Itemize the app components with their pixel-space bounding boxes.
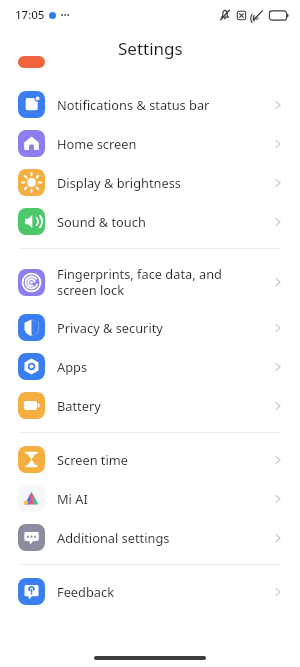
button[interactable]: Notifications & status bar (0, 85, 300, 124)
button[interactable]: Feedback (0, 572, 300, 611)
button[interactable]: Sound & touch (0, 202, 300, 241)
staticText: Fingerprints, face data, and screen lock (57, 265, 222, 299)
staticText: Apps (57, 358, 88, 375)
staticText: Screen time (57, 451, 128, 468)
staticText: 17:05 (15, 7, 45, 23)
button[interactable]: Additional settings (0, 518, 300, 557)
staticText: Display & brightness (57, 174, 181, 191)
staticText: Battery (57, 397, 101, 414)
button[interactable]: Fingerprints, face data, and screen lock (0, 256, 300, 308)
button[interactable]: Battery (0, 386, 300, 425)
button[interactable]: Apps (0, 347, 300, 386)
staticText: Mi AI (57, 490, 88, 507)
button[interactable]: Home screen (0, 124, 300, 163)
staticText: Privacy & security (57, 319, 163, 336)
staticText: Feedback (57, 583, 114, 600)
staticText: Home screen (57, 135, 137, 152)
staticText: Sound & touch (57, 213, 146, 230)
button[interactable]: Mi AI (0, 479, 300, 518)
staticText: Additional settings (57, 529, 170, 546)
button[interactable]: Display & brightness (0, 163, 300, 202)
button[interactable]: Privacy & security (0, 308, 300, 347)
button[interactable]: Screen time (0, 440, 300, 479)
staticText: Notifications & status bar (57, 96, 210, 113)
staticText: Settings (118, 37, 183, 60)
